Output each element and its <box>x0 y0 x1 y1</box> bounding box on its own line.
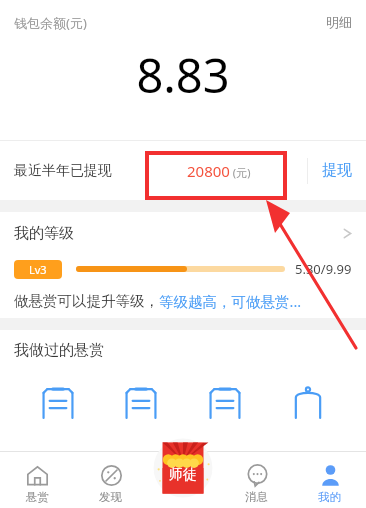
staticText: 最近半年已提现 <box>14 162 112 180</box>
button[interactable]: 悬赏奖励 <box>282 376 334 428</box>
staticText: 我的等级 <box>14 224 74 243</box>
staticText: 等级越高，可做悬赏... <box>159 291 302 311</box>
button[interactable]: 师徒 <box>149 434 217 502</box>
staticText: 我的 <box>318 490 341 504</box>
button[interactable]: 悬赏任务 <box>115 376 167 428</box>
staticText: 钱包余额(元) <box>14 14 87 32</box>
staticText: 悬赏 <box>26 490 49 504</box>
button[interactable]: 悬赏任务 <box>199 376 251 428</box>
button[interactable]: 消息 <box>220 457 293 504</box>
staticText: 我做过的悬赏 <box>14 341 104 360</box>
staticText: 5.30/9.99 <box>295 260 352 278</box>
staticText: 明细 <box>326 14 352 30</box>
staticText: 20800 <box>187 161 230 181</box>
button[interactable]: 做悬赏可以提升等级， <box>14 284 352 318</box>
button[interactable]: 提现 <box>308 161 366 180</box>
button[interactable]: 我的 <box>293 457 366 504</box>
staticText: 8.83 <box>136 43 230 107</box>
staticText: (元) <box>230 165 251 180</box>
staticText: 师徒 <box>169 466 197 484</box>
button[interactable]: 发现 <box>74 457 147 504</box>
staticText: 做悬赏可以提升等级， <box>14 292 159 310</box>
staticText: 消息 <box>245 490 268 504</box>
staticText: 提现 <box>322 161 352 180</box>
staticText: 发现 <box>99 490 122 504</box>
button[interactable]: 悬赏任务 <box>32 376 84 428</box>
button[interactable]: 明细 <box>326 14 352 30</box>
button[interactable]: 我的等级 <box>0 212 366 254</box>
button[interactable]: 悬赏 <box>0 457 74 504</box>
staticText: Lv3 <box>29 262 47 277</box>
